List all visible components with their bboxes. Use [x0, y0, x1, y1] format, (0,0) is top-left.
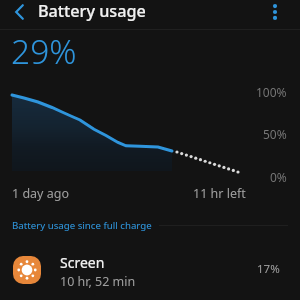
- button[interactable]: More options: [262, 0, 288, 24]
- staticText: 50%: [263, 126, 287, 142]
- button[interactable]: Back: [5, 0, 34, 23]
- staticText: 100%: [256, 84, 287, 100]
- button[interactable]: Screen: [0, 249, 300, 291]
- staticText: 11 hr left: [193, 185, 246, 202]
- staticText: Battery usage: [38, 0, 146, 22]
- staticText: 1 day ago: [12, 185, 69, 202]
- staticText: 0%: [270, 169, 287, 185]
- staticText: Battery usage since full charge: [12, 219, 152, 232]
- staticText: 29%: [11, 28, 77, 74]
- staticText: 10 hr, 52 min: [60, 273, 136, 290]
- staticText: 17%: [257, 261, 280, 277]
- staticText: Screen: [60, 253, 105, 272]
